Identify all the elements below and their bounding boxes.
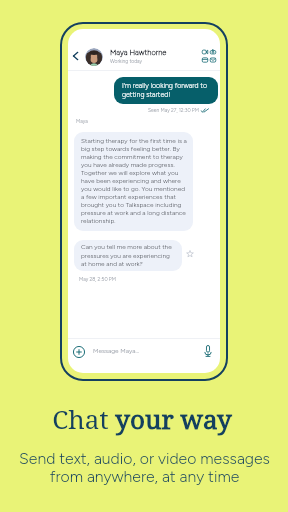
- button[interactable]: Calendar: [202, 57, 208, 63]
- staticText: Send text, audio, or video messages from…: [19, 449, 270, 486]
- button[interactable]: Video call: [202, 49, 208, 55]
- staticText: May 28, 2:50 PM: [79, 276, 116, 282]
- button[interactable]: Add attachment: [73, 346, 85, 358]
- button[interactable]: Star message: [186, 250, 194, 258]
- staticText: Chat your way: [52, 401, 232, 436]
- staticText: Working today: [110, 58, 143, 64]
- button[interactable]: Profile photo: [85, 48, 103, 66]
- button[interactable]: I'm really looking forward to getting st…: [114, 77, 218, 104]
- staticText: Maya: [76, 118, 88, 124]
- button[interactable]: Take photo: [210, 49, 216, 55]
- staticText: Maya Hawthorne: [110, 48, 167, 57]
- button[interactable]: Messages: [210, 57, 216, 63]
- staticText: Message Maya...: [93, 347, 140, 355]
- staticText: Can you tell me more about the pressures…: [81, 243, 176, 267]
- button[interactable]: Starting therapy for the first time is a…: [74, 132, 193, 231]
- staticText: I'm really looking forward to getting st…: [122, 81, 212, 99]
- staticText: Starting therapy for the first time is a…: [81, 137, 187, 225]
- button[interactable]: Record voice message: [204, 345, 212, 357]
- button[interactable]: Back: [68, 49, 82, 63]
- staticText: Seen May 27, 12:30 PM: [148, 107, 199, 113]
- button[interactable]: Can you tell me more about the pressures…: [74, 240, 182, 271]
